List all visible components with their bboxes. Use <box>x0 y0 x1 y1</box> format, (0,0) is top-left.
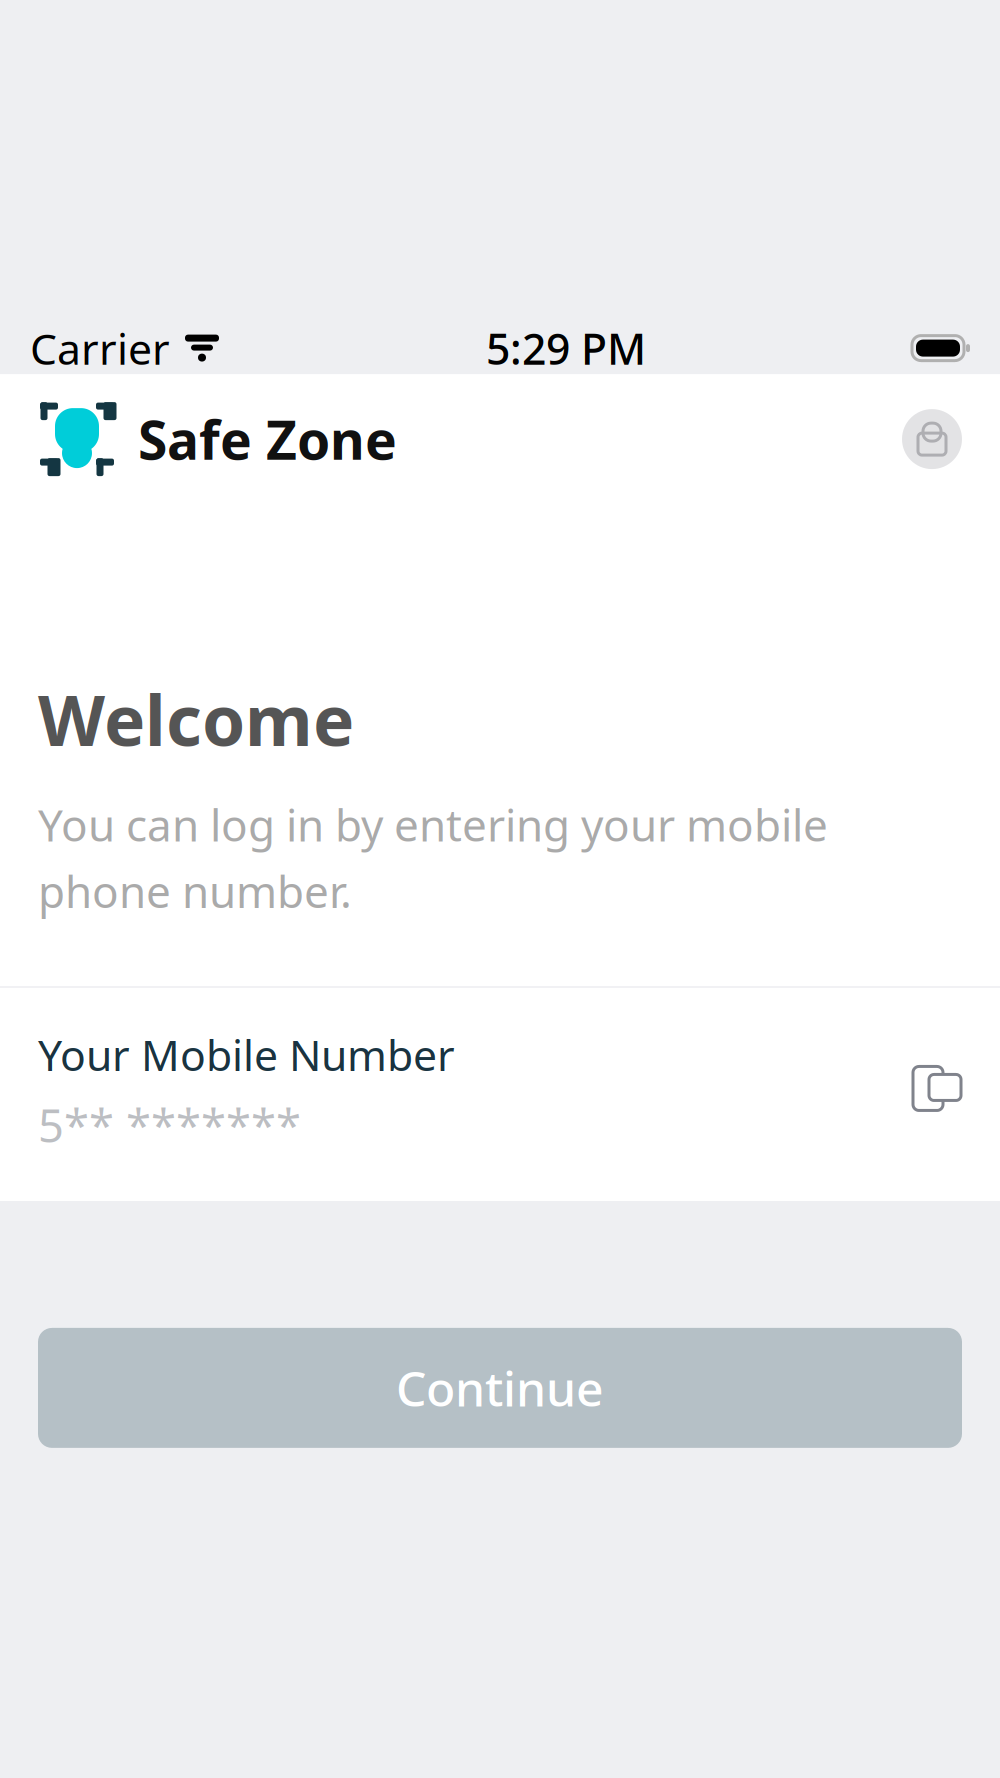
button[interactable]: Secure login <box>902 409 962 469</box>
staticText: You can log in by entering your mobile <box>38 795 828 854</box>
button[interactable]: Continue <box>38 1328 962 1448</box>
staticText: 5** ******* <box>38 1095 301 1155</box>
staticText: Your Mobile Number <box>38 1026 455 1083</box>
staticText: Safe Zone <box>138 404 397 474</box>
staticText: 5:29 PM <box>486 320 646 376</box>
staticText: phone number. <box>38 862 352 920</box>
staticText: Carrier <box>30 320 170 376</box>
staticText: Continue <box>396 1356 604 1420</box>
staticText: Welcome <box>38 673 354 765</box>
button[interactable]: Your Mobile Number <box>0 988 1000 1201</box>
